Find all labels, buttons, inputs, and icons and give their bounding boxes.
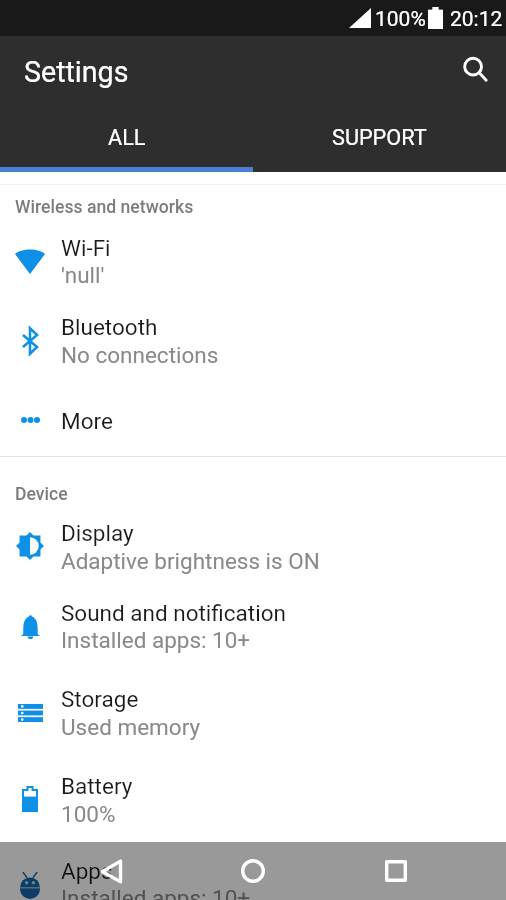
staticText: Apps: [61, 858, 113, 884]
button[interactable]: [0, 673, 506, 753]
staticText: ALL: [108, 125, 146, 150]
staticText: Battery: [61, 773, 133, 799]
staticText: Adaptive brightness is ON: [61, 548, 320, 574]
button[interactable]: [0, 845, 506, 900]
staticText: Storage: [61, 686, 139, 712]
staticText: Bluetooth: [61, 314, 158, 340]
button[interactable]: SUPPORT: [253, 104, 506, 167]
staticText: More: [61, 408, 113, 434]
staticText: Device: [15, 484, 68, 505]
button[interactable]: Home: [225, 842, 281, 900]
staticText: Settings: [24, 55, 129, 89]
staticText: Sound and notification: [61, 600, 286, 626]
staticText: Used memory: [61, 714, 201, 740]
button[interactable]: Search: [450, 43, 504, 97]
button[interactable]: [0, 506, 506, 586]
button[interactable]: [0, 759, 506, 839]
staticText: 'null': [61, 262, 105, 288]
staticText: 100%: [375, 7, 426, 32]
button[interactable]: [0, 380, 506, 460]
staticText: 20:12: [450, 7, 503, 32]
button[interactable]: ALL: [0, 104, 253, 167]
staticText: Wireless and networks: [15, 197, 194, 218]
button[interactable]: Recents: [368, 842, 424, 900]
button[interactable]: [0, 587, 506, 667]
button[interactable]: [0, 301, 506, 381]
button[interactable]: [0, 221, 506, 301]
staticText: No connections: [61, 342, 219, 368]
staticText: Installed apps: 10+: [61, 885, 251, 900]
staticText: 100%: [61, 801, 116, 827]
button[interactable]: Back: [83, 842, 139, 900]
staticText: Display: [61, 520, 134, 546]
staticText: Installed apps: 10+: [61, 627, 251, 653]
staticText: Wi-Fi: [61, 235, 111, 261]
staticText: SUPPORT: [332, 125, 427, 150]
